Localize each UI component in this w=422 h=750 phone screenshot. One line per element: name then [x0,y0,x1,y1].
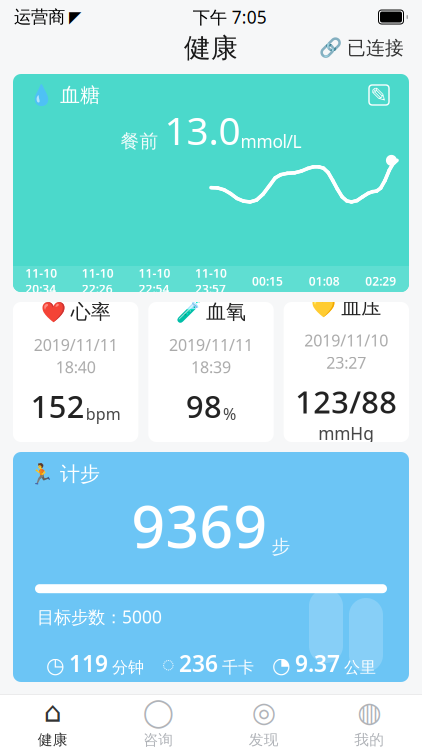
staticText: 11-10 22:54 [138,265,170,297]
staticText: 已连接 [347,36,404,59]
button[interactable]: 编辑血糖 [365,81,393,109]
button[interactable]: 🔗 [315,32,408,63]
staticText: ◯ [143,696,174,728]
staticText: 🏃 [29,463,54,485]
staticText: 98 [186,386,222,426]
staticText: 餐前 [120,130,158,153]
staticText: 119 [69,648,108,678]
staticText: 9369 [131,486,267,564]
staticText: 123/88 [295,381,397,422]
staticText: 9.37 [295,648,340,678]
staticText: 13.0 [164,104,240,156]
staticText: 00:15 [252,273,283,289]
staticText: ◷ [46,653,65,677]
staticText: 02:29 [365,273,396,289]
staticText: % [223,403,236,424]
staticText: 计步 [60,462,100,486]
staticText: ◤ [69,8,81,26]
staticText: 236 [179,648,218,678]
staticText: 分钟 [112,658,144,677]
staticText: 2019/11/10 [304,330,388,351]
staticText: 18:39 [191,356,231,378]
staticText: 🧪 [176,300,201,323]
staticText: mmHg [318,422,374,445]
button[interactable]: ❤️ [13,302,138,442]
staticText: 千卡 [222,658,254,677]
button[interactable]: ⌂ [0,695,105,750]
button[interactable]: 🧪 [148,302,274,442]
staticText: 运营商 [14,6,65,28]
staticText: ◌ [162,649,175,677]
staticText: ◔ [272,653,291,677]
staticText: 2019/11/11 [169,334,253,355]
staticText: 咨询 [143,731,173,749]
staticText: 心率 [71,300,111,324]
staticText: 01:08 [309,273,340,289]
staticText: 步 [271,535,290,558]
staticText: ◍ [357,696,381,728]
staticText: 11-10 20:34 [25,265,57,297]
staticText: 健康 [38,731,68,749]
staticText: 152 [31,386,85,426]
staticText: ❤️ [41,300,66,323]
staticText: 血压 [341,295,381,320]
button[interactable]: ◍ [316,695,422,750]
staticText: 💛 [311,296,336,319]
staticText: ⌂ [44,696,62,728]
staticText: 我的 [354,731,384,749]
staticText: 11-10 23:57 [195,265,227,297]
staticText: 目标步数：5000 [37,605,162,628]
staticText: 18:40 [56,356,96,378]
button[interactable]: 💛 [284,302,409,442]
staticText: 23:27 [326,352,366,373]
staticText: bpm [86,403,121,424]
staticText: 发现 [249,731,279,749]
staticText: 血氧 [206,300,246,324]
staticText: ◎ [252,696,276,728]
button[interactable]: ◎ [211,695,316,750]
staticText: ✎ [370,84,387,106]
staticText: 公里 [344,658,376,677]
staticText: 2019/11/11 [34,334,118,355]
staticText: 血糖 [60,83,100,107]
staticText: 11-10 22:26 [82,265,114,297]
staticText: 🔗 [319,37,342,59]
staticText: mmol/L [240,130,301,153]
button[interactable]: ◯ [105,695,211,750]
staticText: 下午 7:05 [193,5,267,28]
staticText: 健康 [184,32,238,64]
staticText: 💧 [29,84,54,106]
